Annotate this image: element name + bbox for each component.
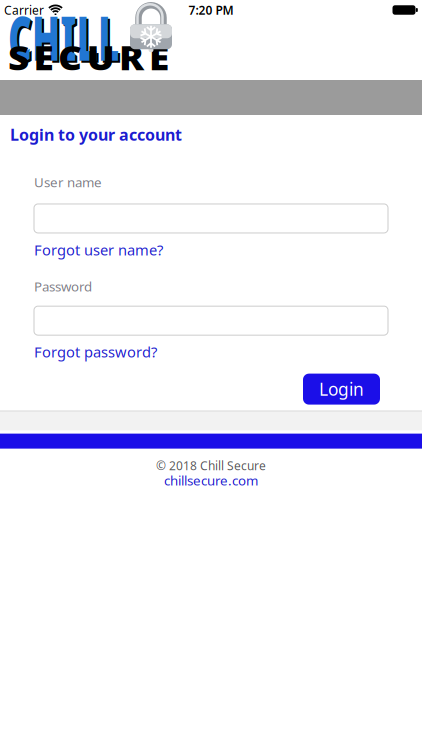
staticText: Password (34, 277, 92, 295)
staticText: chillsecure.com (164, 472, 258, 489)
staticText: © 2018 Chill Secure (156, 458, 266, 473)
button[interactable]: User name (34, 204, 388, 233)
staticText: CHILL (8, 0, 194, 78)
staticText: Login (319, 378, 364, 401)
button[interactable]: Login (303, 374, 380, 405)
staticText: Forgot password? (34, 342, 157, 362)
button[interactable]: Forgot user name? (34, 240, 163, 259)
staticText: 7:20 PM (188, 2, 233, 18)
button[interactable]: Forgot password? (34, 342, 157, 362)
button[interactable]: Password (34, 306, 388, 335)
staticText: Carrier (4, 2, 44, 18)
staticText: SECURE (8, 35, 153, 80)
staticText: User name (34, 173, 102, 191)
staticText: Login to your account (10, 124, 182, 145)
button[interactable]: chillsecure.com (164, 472, 258, 489)
staticText: Forgot user name? (34, 240, 163, 259)
staticText: CHILL (10, 0, 196, 80)
